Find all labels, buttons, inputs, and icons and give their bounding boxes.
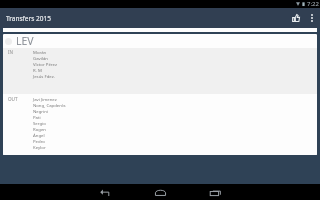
button[interactable]: LEV bbox=[3, 34, 317, 48]
staticText: Pati bbox=[33, 114, 41, 120]
staticText: Morán bbox=[33, 49, 47, 55]
staticText: IN bbox=[8, 49, 14, 55]
button[interactable]: Like bbox=[287, 8, 305, 28]
staticText: Pedro bbox=[33, 138, 45, 144]
staticText: 7:22 bbox=[307, 0, 319, 8]
staticText: OUT bbox=[8, 96, 18, 102]
button[interactable]: IN bbox=[3, 48, 317, 94]
staticText: Ángel bbox=[33, 132, 45, 138]
staticText: Víctor Pérez bbox=[33, 61, 57, 67]
staticText: Rogen bbox=[33, 126, 46, 132]
staticText: Javi Jimenez bbox=[33, 96, 57, 102]
staticText: Negrini bbox=[33, 108, 48, 114]
staticText: Jesús Fdez. bbox=[33, 73, 55, 79]
staticText: R. M bbox=[33, 67, 42, 73]
button[interactable]: More options bbox=[305, 8, 319, 28]
button[interactable]: OUT bbox=[3, 94, 317, 155]
staticText: Gavilán bbox=[33, 55, 49, 61]
staticText: Keylor bbox=[33, 144, 46, 150]
staticText: Sergio bbox=[33, 120, 46, 126]
button[interactable]: Home bbox=[148, 184, 172, 200]
button[interactable]: Back bbox=[93, 184, 117, 200]
staticText: Nong, Capderós bbox=[33, 102, 66, 108]
button[interactable]: Recent apps bbox=[203, 184, 227, 200]
staticText: Transfers 2015 bbox=[6, 14, 51, 23]
staticText: LEV bbox=[16, 34, 34, 48]
